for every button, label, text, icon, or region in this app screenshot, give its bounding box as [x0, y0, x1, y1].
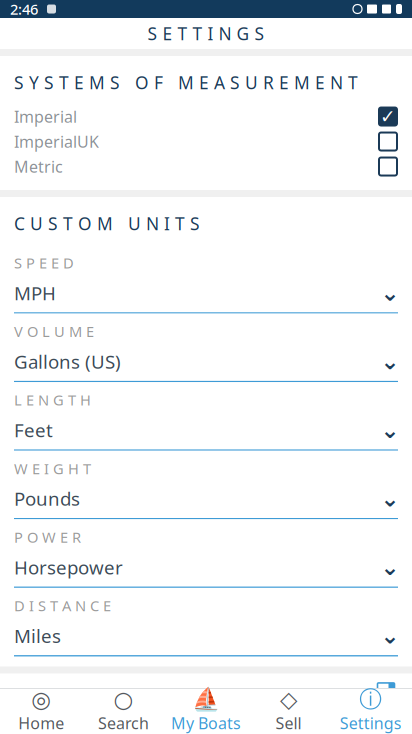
staticText: ⌄ — [380, 554, 399, 580]
staticText: ◇ — [280, 686, 297, 712]
button[interactable]: C O N T A C T B O A T S G R O U P — [0, 721, 412, 734]
button[interactable]: S P E E D — [0, 245, 412, 314]
staticText: Miles — [14, 623, 61, 648]
staticText: ⌄ — [380, 417, 399, 443]
staticText: ◎ — [31, 686, 51, 712]
staticText: V O L U M E — [14, 322, 94, 341]
staticText: C U S T O M U N I T S — [14, 212, 200, 235]
staticText: Imperial — [14, 106, 77, 127]
staticText: ⌄ — [380, 623, 399, 649]
button[interactable]: Metric — [0, 154, 412, 179]
button[interactable]: W E I G H T — [0, 451, 412, 519]
staticText: P O W E R — [14, 527, 81, 547]
staticText: Horsepower — [14, 555, 123, 580]
staticText: ⌄ — [380, 486, 399, 511]
staticText: T E R M S O F S E R V I C E — [14, 682, 247, 705]
staticText: ⌄ — [380, 349, 399, 374]
button[interactable]: ○ — [82, 689, 165, 734]
button[interactable]: D I S T A N C E — [0, 588, 412, 656]
button[interactable]: ◎ — [0, 689, 82, 734]
staticText: C O N T A C T B O A T S G R O U P — [14, 730, 311, 734]
staticText: ⓘ — [359, 685, 382, 713]
staticText: Search — [98, 712, 149, 734]
staticText: MPH — [14, 280, 56, 305]
staticText: L E N G T H — [14, 390, 91, 410]
staticText: Gallons (US) — [14, 349, 121, 374]
staticText: Settings — [340, 712, 402, 734]
button[interactable]: ImperialUK — [0, 129, 412, 154]
staticText: Home — [18, 712, 64, 734]
staticText: ⌄ — [380, 280, 399, 306]
button[interactable]: L E N G T H — [0, 382, 412, 451]
staticText: ⛵ — [192, 686, 220, 712]
staticText: My Boats — [171, 712, 241, 734]
button[interactable]: ◇ — [247, 689, 330, 734]
staticText: S E T T I N G S — [147, 22, 264, 45]
button[interactable]: ⛵ — [165, 689, 247, 734]
staticText: D I S T A N C E — [14, 596, 111, 615]
staticText: Metric — [14, 156, 63, 177]
staticText: ∨ — [378, 730, 392, 734]
staticText: S P E E D — [14, 253, 74, 272]
staticText: Feet — [14, 418, 53, 442]
staticText: ImperialUK — [14, 131, 99, 152]
button[interactable]: P O W E R — [0, 519, 412, 588]
staticText: ○ — [114, 686, 134, 712]
staticText: S Y S T E M S O F M E A S U R E M E N T — [14, 71, 358, 94]
staticText: W E I G H T — [14, 459, 91, 478]
staticText: Pounds — [14, 486, 80, 511]
staticText: ✓ — [380, 106, 396, 127]
staticText: Sell — [275, 712, 301, 734]
staticText: 2:46 — [10, 0, 38, 19]
button[interactable]: ⓘ — [330, 689, 412, 734]
button[interactable]: Imperial — [0, 104, 412, 129]
button[interactable]: V O L U M E — [0, 314, 412, 382]
button[interactable]: T E R M S O F S E R V I C E — [0, 673, 412, 714]
